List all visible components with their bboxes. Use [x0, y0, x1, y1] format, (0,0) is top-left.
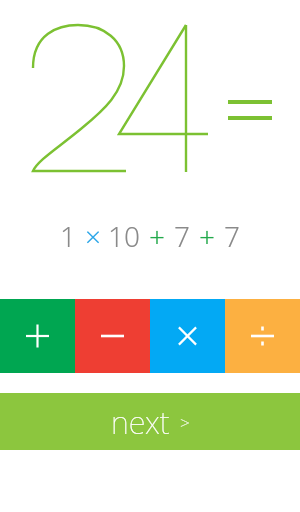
button[interactable]: Divide [225, 299, 300, 373]
staticText: 7 [174, 217, 190, 255]
button[interactable]: Minus [75, 299, 150, 373]
button[interactable]: Multiply [150, 299, 225, 373]
staticText: next [111, 401, 170, 443]
button[interactable]: next [0, 393, 300, 450]
staticText: 1 [60, 217, 76, 255]
staticText: > [180, 411, 190, 434]
staticText: + [149, 217, 165, 255]
staticText: 10 [108, 217, 140, 255]
staticText: + [199, 217, 215, 255]
staticText: × [85, 217, 101, 255]
staticText: 7 [224, 217, 240, 255]
button[interactable]: Plus [0, 299, 75, 373]
